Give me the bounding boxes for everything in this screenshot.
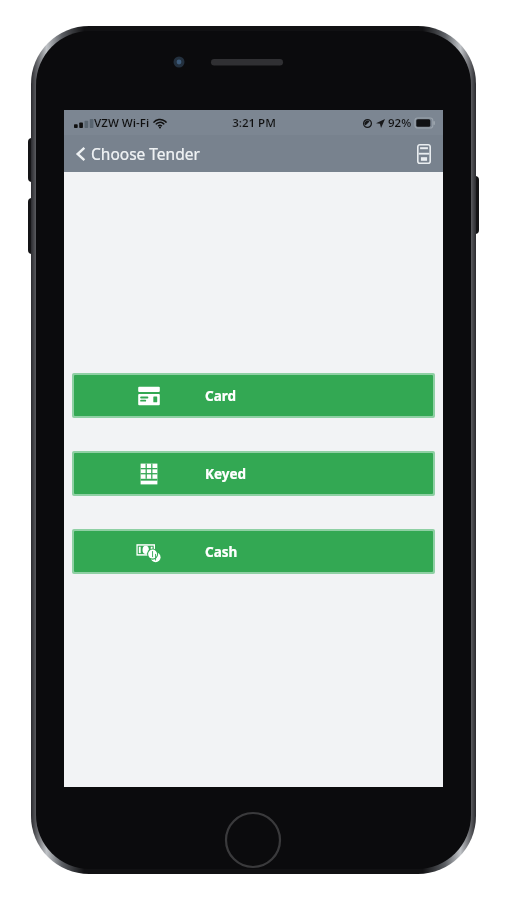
button[interactable]: Printer <box>417 144 443 164</box>
button[interactable]: Choose Tender <box>64 137 210 170</box>
staticText: Cash <box>205 543 238 561</box>
button[interactable]: Cash <box>74 531 433 572</box>
staticText: Keyed <box>205 465 247 483</box>
button[interactable]: Card <box>74 375 433 416</box>
staticText: 3:21 PM <box>232 115 276 131</box>
staticText: VZW Wi-Fi <box>94 115 150 131</box>
button[interactable]: Keyed <box>74 453 433 494</box>
staticText: Card <box>205 387 237 405</box>
staticText: 92% <box>388 115 412 131</box>
staticText: Choose Tender <box>91 143 200 164</box>
